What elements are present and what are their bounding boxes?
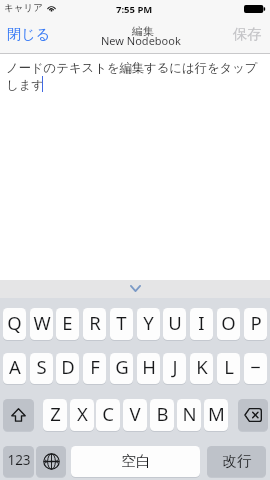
button[interactable]: Q [3, 308, 26, 340]
button[interactable]: U [163, 308, 186, 340]
staticText: Y [143, 310, 154, 335]
staticText: 閉じる [7, 25, 51, 43]
staticText: P [250, 310, 262, 335]
staticText: 保存 [233, 25, 262, 43]
staticText: L [224, 354, 234, 379]
button[interactable]: H [137, 353, 160, 384]
button[interactable]: L [217, 353, 240, 384]
staticText: I [198, 310, 205, 335]
staticText: C [102, 401, 114, 426]
staticText: 7:55 PM [116, 3, 153, 16]
button[interactable]: 123 [3, 446, 34, 477]
staticText: T [116, 310, 127, 335]
button[interactable]: J [163, 353, 186, 384]
button[interactable]: K [190, 353, 213, 384]
button[interactable]: − [244, 353, 267, 384]
button[interactable]: F [83, 353, 106, 384]
button[interactable]: Shift [3, 399, 34, 431]
staticText: K [196, 354, 208, 379]
button[interactable]: T [110, 308, 133, 340]
button[interactable]: R [83, 308, 106, 340]
button[interactable]: M [204, 399, 228, 431]
staticText: D [61, 354, 75, 379]
staticText: V [129, 401, 141, 426]
staticText: R [89, 310, 101, 335]
staticText: キャリア [4, 2, 43, 14]
staticText: 編集 [132, 24, 154, 38]
staticText: X [77, 401, 88, 426]
button[interactable]: O [217, 308, 240, 340]
button[interactable]: I [190, 308, 213, 340]
button[interactable]: 閉じる [6, 25, 52, 43]
staticText: 空白 [121, 452, 151, 470]
staticText: H [142, 354, 156, 379]
button[interactable]: C [96, 399, 120, 431]
staticText: Q [7, 310, 22, 335]
button[interactable]: P [244, 308, 267, 340]
staticText: 改行 [222, 452, 252, 470]
button[interactable]: G [110, 353, 133, 384]
button[interactable]: Next keyboard [36, 446, 66, 477]
staticText: G [115, 354, 129, 379]
staticText: B [156, 401, 169, 426]
button[interactable]: D [56, 353, 79, 384]
staticText: 123 [7, 451, 31, 469]
staticText: − [250, 354, 261, 379]
button[interactable]: W [30, 308, 53, 340]
staticText: W [33, 310, 51, 335]
button[interactable]: B [150, 399, 174, 431]
staticText: S [36, 354, 47, 379]
button[interactable]: A [3, 353, 26, 384]
button[interactable]: 保存 [232, 25, 263, 43]
staticText: Z [50, 401, 61, 426]
button[interactable]: V [123, 399, 147, 431]
button[interactable]: N [177, 399, 201, 431]
staticText: A [9, 354, 21, 379]
button[interactable]: 空白 [71, 446, 200, 477]
button[interactable]: Y [137, 308, 160, 340]
button[interactable]: X [70, 399, 94, 431]
staticText: U [168, 310, 182, 335]
staticText: ノードのテキストを編集するには行をタップします [6, 60, 264, 92]
staticText: N [182, 401, 197, 426]
staticText: J [172, 354, 178, 379]
staticText: M [208, 401, 225, 426]
button[interactable]: E [56, 308, 79, 340]
button[interactable]: S [30, 353, 53, 384]
button[interactable]: 改行 [207, 446, 266, 477]
staticText: O [221, 310, 236, 335]
staticText: E [62, 310, 73, 335]
staticText: F [90, 354, 100, 379]
button[interactable]: Z [43, 399, 67, 431]
staticText: New Nodebook [101, 33, 181, 48]
button[interactable]: Backspace [238, 399, 268, 431]
button[interactable]: Hide keyboard [130, 285, 141, 292]
